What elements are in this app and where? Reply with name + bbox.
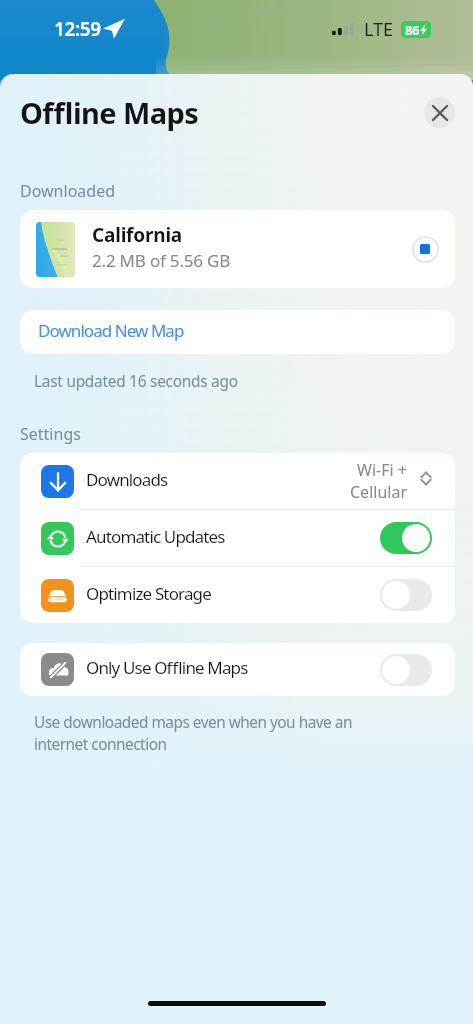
staticText: Offline Maps <box>20 93 199 132</box>
staticText: Download New Map <box>38 319 184 342</box>
button[interactable]: California <box>20 210 455 288</box>
button[interactable]: Downloads <box>20 453 455 509</box>
button[interactable]: Only Use Offline Maps <box>20 643 455 696</box>
staticText: Wi-Fi + <box>357 459 407 481</box>
button[interactable]: Download New Map <box>20 310 455 354</box>
staticText: Last updated 16 seconds ago <box>34 371 238 392</box>
staticText: California <box>92 222 183 248</box>
staticText: 86 <box>405 21 420 38</box>
staticText: Use downloaded maps even when you have a… <box>34 712 352 755</box>
staticText: Automatic Updates <box>86 525 225 548</box>
button[interactable]: Stop download <box>411 235 439 263</box>
staticText: 12:59 <box>54 16 101 42</box>
button[interactable]: Off <box>380 654 432 686</box>
staticText: Settings <box>20 423 81 445</box>
button[interactable]: Optimize Storage <box>20 567 455 623</box>
staticText: Downloaded <box>20 180 115 202</box>
staticText: 2.2 MB of 5.56 GB <box>92 249 231 272</box>
button[interactable]: On <box>380 522 432 554</box>
staticText: Downloads <box>86 468 168 491</box>
staticText: Cellular <box>350 481 407 503</box>
button[interactable]: Automatic Updates <box>20 510 455 566</box>
button[interactable]: Off <box>380 579 432 611</box>
button[interactable]: Close <box>424 97 455 128</box>
staticText: Optimize Storage <box>86 582 211 605</box>
staticText: LTE <box>364 17 394 42</box>
staticText: Only Use Offline Maps <box>86 656 248 679</box>
